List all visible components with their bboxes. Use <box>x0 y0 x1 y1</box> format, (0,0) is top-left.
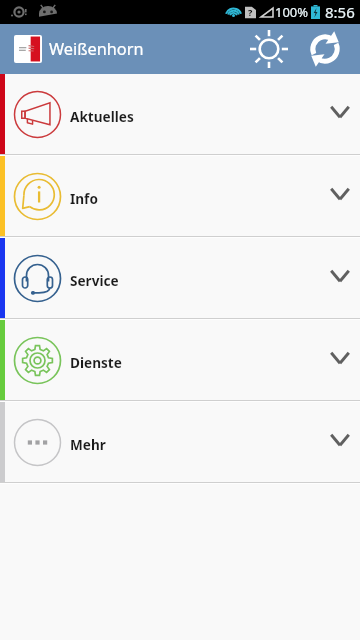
staticText: Mehr <box>70 435 106 454</box>
button[interactable]: Brightness <box>241 24 297 74</box>
staticText: Weißenhorn <box>49 38 144 60</box>
button[interactable]: Dienste <box>0 320 360 400</box>
staticText: 100% <box>275 3 309 21</box>
staticText: Info <box>70 189 98 208</box>
staticText: Aktuelles <box>70 107 134 126</box>
button[interactable]: Refresh <box>297 24 353 74</box>
button[interactable]: Weißenhorn logo <box>14 35 42 63</box>
button[interactable]: Mehr <box>0 402 360 482</box>
staticText: ? <box>248 6 253 18</box>
button[interactable]: Service <box>0 238 360 318</box>
staticText: Dienste <box>70 353 122 372</box>
button[interactable]: Info <box>0 156 360 236</box>
staticText: 8:56 <box>325 2 355 22</box>
button[interactable]: Aktuelles <box>0 74 360 154</box>
staticText: Service <box>70 271 119 290</box>
